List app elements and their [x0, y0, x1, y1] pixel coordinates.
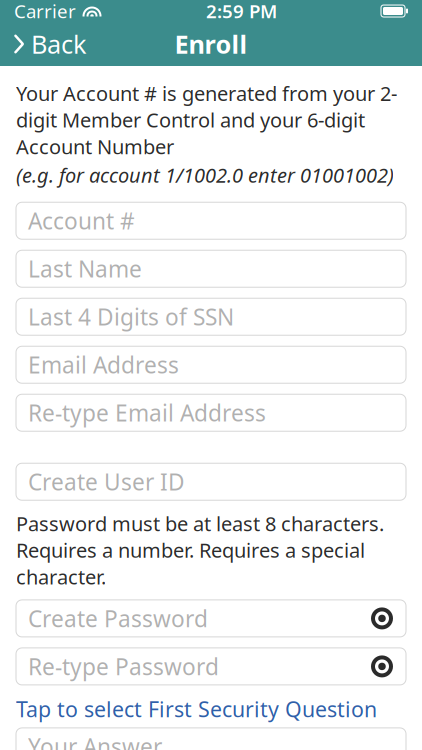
staticText: (e.g. for account 1/1002.0 enter 0100100… — [16, 162, 394, 188]
staticText: Email Address — [28, 350, 179, 380]
staticText: Last 4 Digits of SSN — [28, 302, 234, 332]
staticText: Last Name — [28, 254, 142, 284]
staticText: Password must be at least 8 characters. … — [16, 510, 384, 590]
staticText: Create Password — [28, 603, 208, 633]
staticText: Re-type Password — [28, 651, 219, 681]
staticText: Carrier — [14, 0, 76, 23]
staticText: 2:59 PM — [206, 0, 277, 23]
button[interactable]: Show password — [362, 658, 394, 674]
staticText: Your Answer — [28, 731, 162, 750]
staticText: Enroll — [174, 27, 247, 61]
button[interactable]: Tap to select First Security Question — [16, 693, 406, 725]
staticText: Your Account # is generated from your 2-… — [16, 80, 397, 160]
button[interactable]: Back — [0, 22, 99, 66]
staticText: Create User ID — [28, 467, 185, 497]
staticText: Back — [31, 27, 87, 61]
staticText: Account # — [28, 206, 135, 236]
button[interactable]: Show password — [362, 610, 394, 626]
staticText: Tap to select First Security Question — [16, 695, 377, 723]
staticText: Re-type Email Address — [28, 398, 266, 428]
